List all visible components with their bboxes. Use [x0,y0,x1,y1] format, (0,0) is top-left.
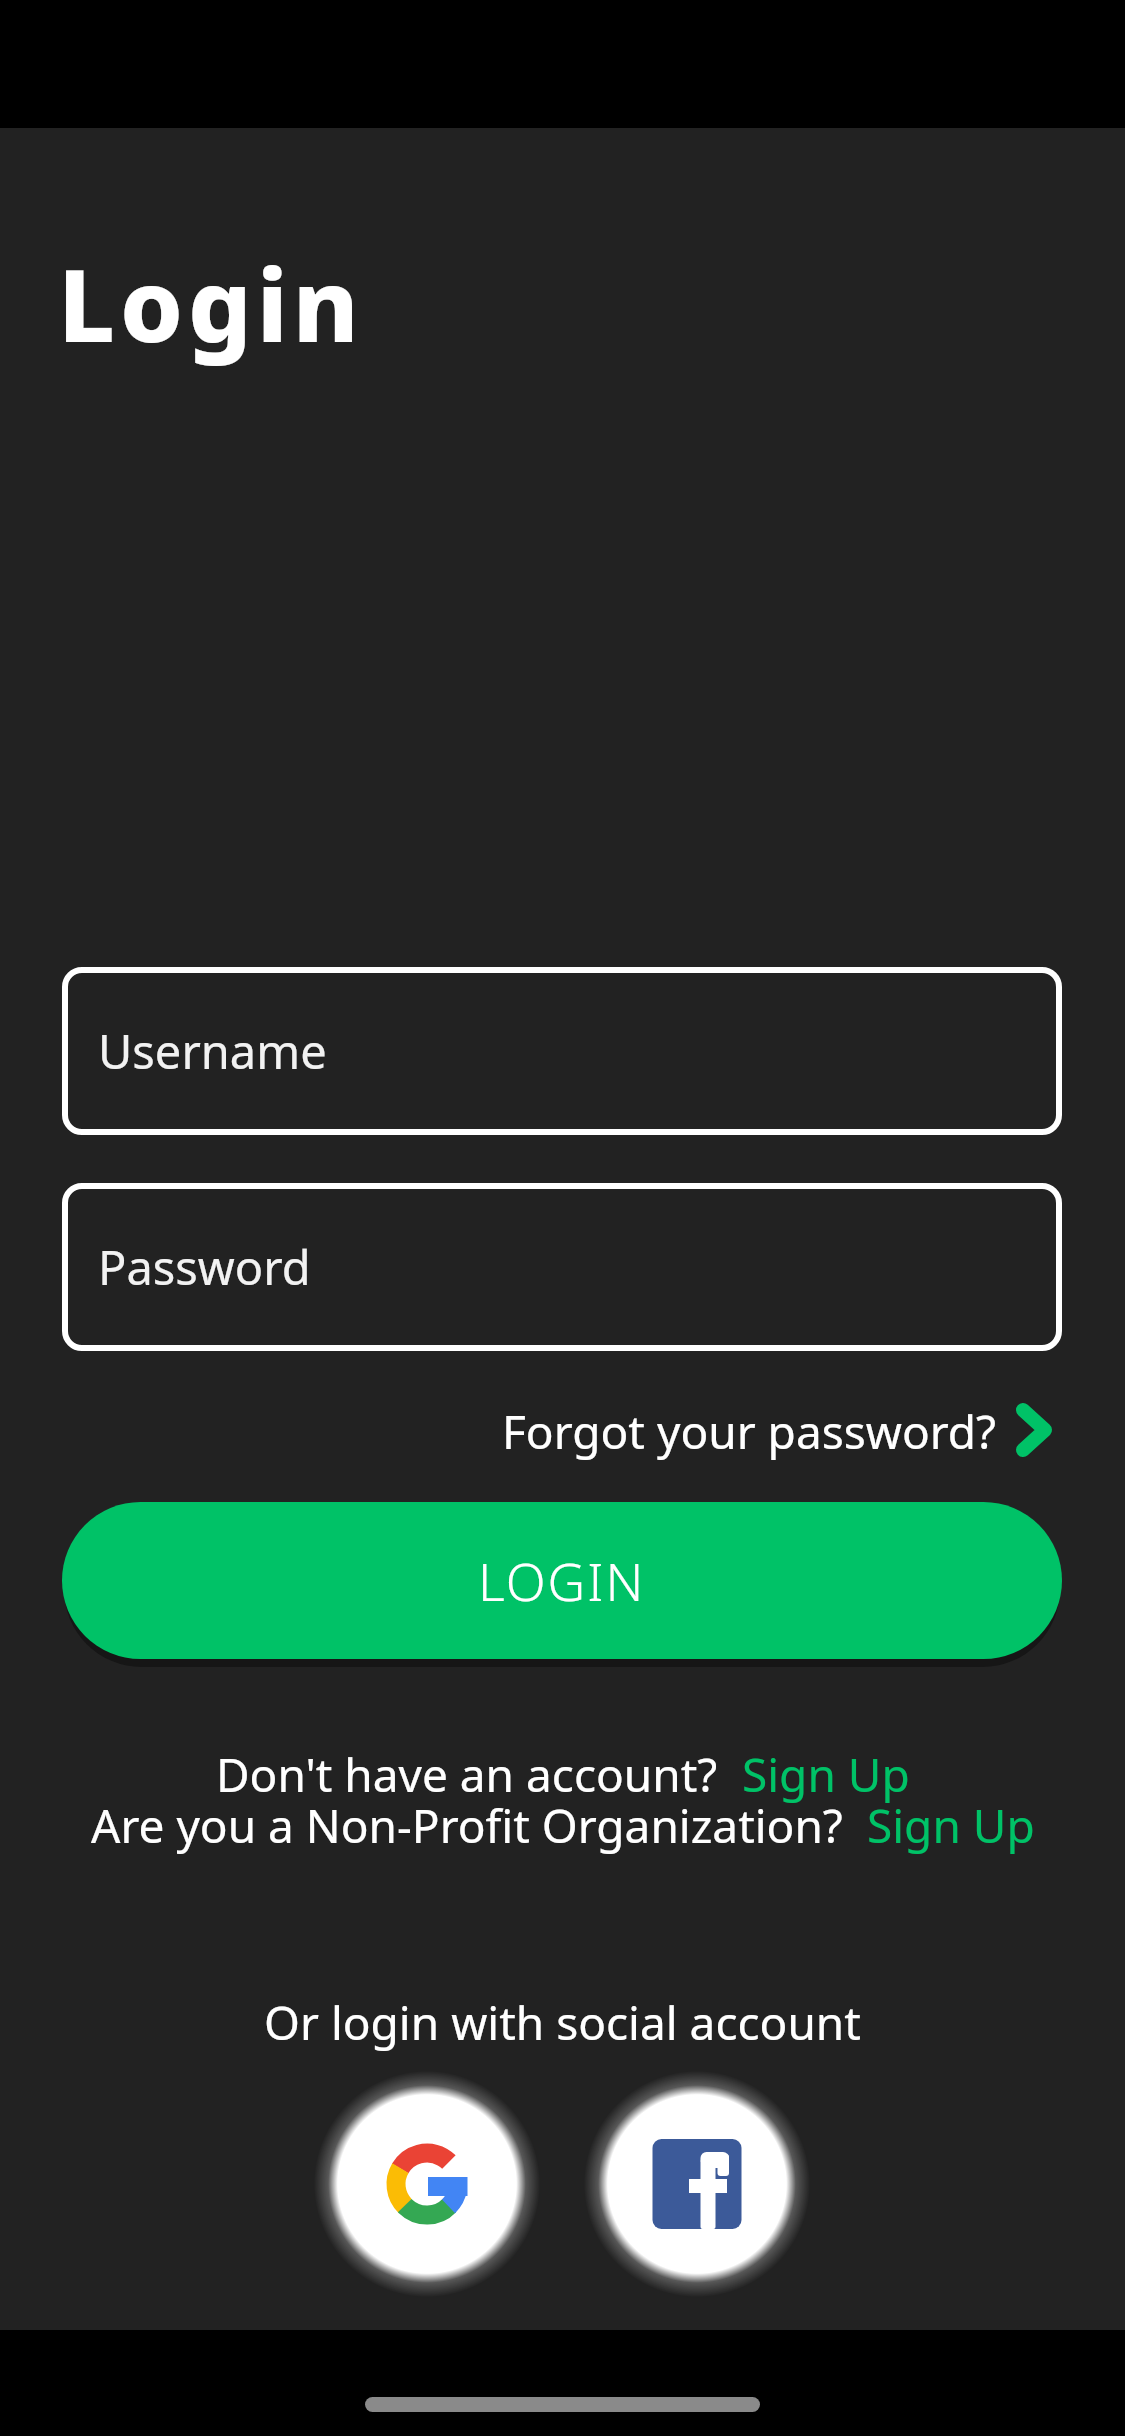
button[interactable]: Don't have an account? [216,1743,910,1806]
staticText: Username [98,1019,327,1083]
staticText: Sign Up [742,1743,910,1806]
staticText: LOGIN [478,1545,646,1616]
button[interactable] [307,2064,547,2304]
staticText: Are you a Non-Profit Organization? [91,1794,867,1857]
staticText: Forgot your password? [502,1400,997,1460]
button[interactable]: Username [62,967,1062,1135]
staticText: Sign Up [867,1794,1035,1857]
staticText: Or login with social account [264,1991,861,2054]
staticText: Don't have an account? [216,1743,742,1806]
button[interactable]: Are you a Non-Profit Organization? [91,1794,1035,1857]
button[interactable]: LOGIN [62,1502,1062,1659]
staticText: Login [58,235,364,371]
button[interactable] [577,2064,817,2304]
button[interactable]: Password [62,1183,1062,1351]
staticText: Password [98,1235,311,1299]
button[interactable]: Forgot your password? [0,1400,1053,1460]
